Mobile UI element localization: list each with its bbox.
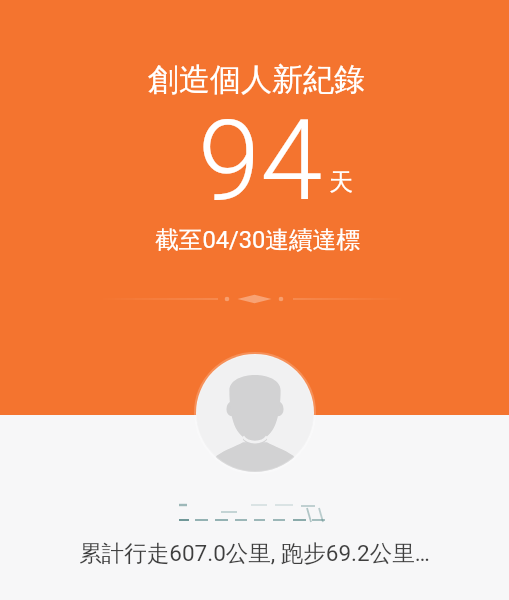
staticText: 截至04/30連續達標 — [155, 225, 361, 255]
staticText: 天 — [329, 167, 353, 197]
button[interactable]: Profile photo — [196, 354, 314, 472]
staticText: 累計行走607.0公里, 跑步69.2公里… — [79, 539, 430, 567]
button[interactable]: User name — [175, 496, 335, 526]
staticText: 創造個人新紀錄 — [148, 60, 365, 99]
staticText: 94 — [198, 95, 323, 226]
